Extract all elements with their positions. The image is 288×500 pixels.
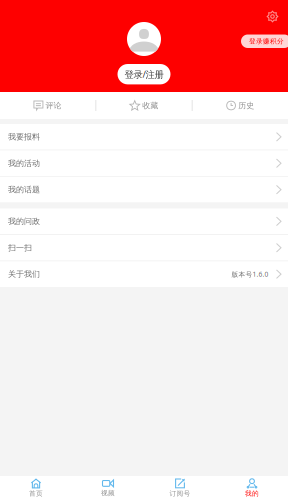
staticText: 评论 bbox=[45, 101, 61, 110]
staticText: 订阅号 bbox=[169, 489, 190, 498]
staticText: 我的问政 bbox=[8, 216, 40, 226]
button[interactable]: 登录/注册 bbox=[117, 64, 170, 84]
button[interactable]: 我的话题 bbox=[0, 177, 288, 202]
button[interactable]: 扫一扫 bbox=[0, 235, 288, 261]
staticText: 历史 bbox=[238, 101, 254, 110]
staticText: 关于我们 bbox=[8, 269, 40, 279]
button[interactable]: 我的问政 bbox=[0, 208, 288, 234]
button[interactable]: 关于我们 bbox=[0, 261, 288, 287]
staticText: 视频 bbox=[101, 489, 115, 497]
staticText: 收藏 bbox=[142, 101, 158, 110]
staticText: 扫一扫 bbox=[8, 243, 32, 253]
button[interactable]: 视频 bbox=[72, 476, 144, 500]
staticText: 登录赚积分 bbox=[249, 37, 284, 45]
button[interactable]: 历史 bbox=[193, 92, 288, 119]
staticText: 我的 bbox=[245, 489, 259, 498]
button[interactable]: 收藏 bbox=[96, 92, 192, 119]
staticText: 首页 bbox=[29, 489, 43, 498]
button[interactable]: 我的 bbox=[216, 476, 288, 500]
button[interactable]: 设置 bbox=[261, 5, 284, 28]
staticText: 版本号1.6.0 bbox=[231, 270, 268, 279]
staticText: 登录/注册 bbox=[124, 68, 163, 80]
button[interactable]: 我要报料 bbox=[0, 124, 288, 150]
button[interactable]: 首页 bbox=[0, 476, 72, 500]
button[interactable]: 我的活动 bbox=[0, 150, 288, 176]
button[interactable]: 订阅号 bbox=[144, 476, 216, 500]
staticText: 我要报料 bbox=[8, 132, 40, 142]
staticText: 我的话题 bbox=[8, 185, 40, 194]
button[interactable]: 登录赚积分 bbox=[241, 34, 288, 48]
staticText: 我的活动 bbox=[8, 158, 40, 168]
button[interactable]: 评论 bbox=[0, 92, 95, 119]
